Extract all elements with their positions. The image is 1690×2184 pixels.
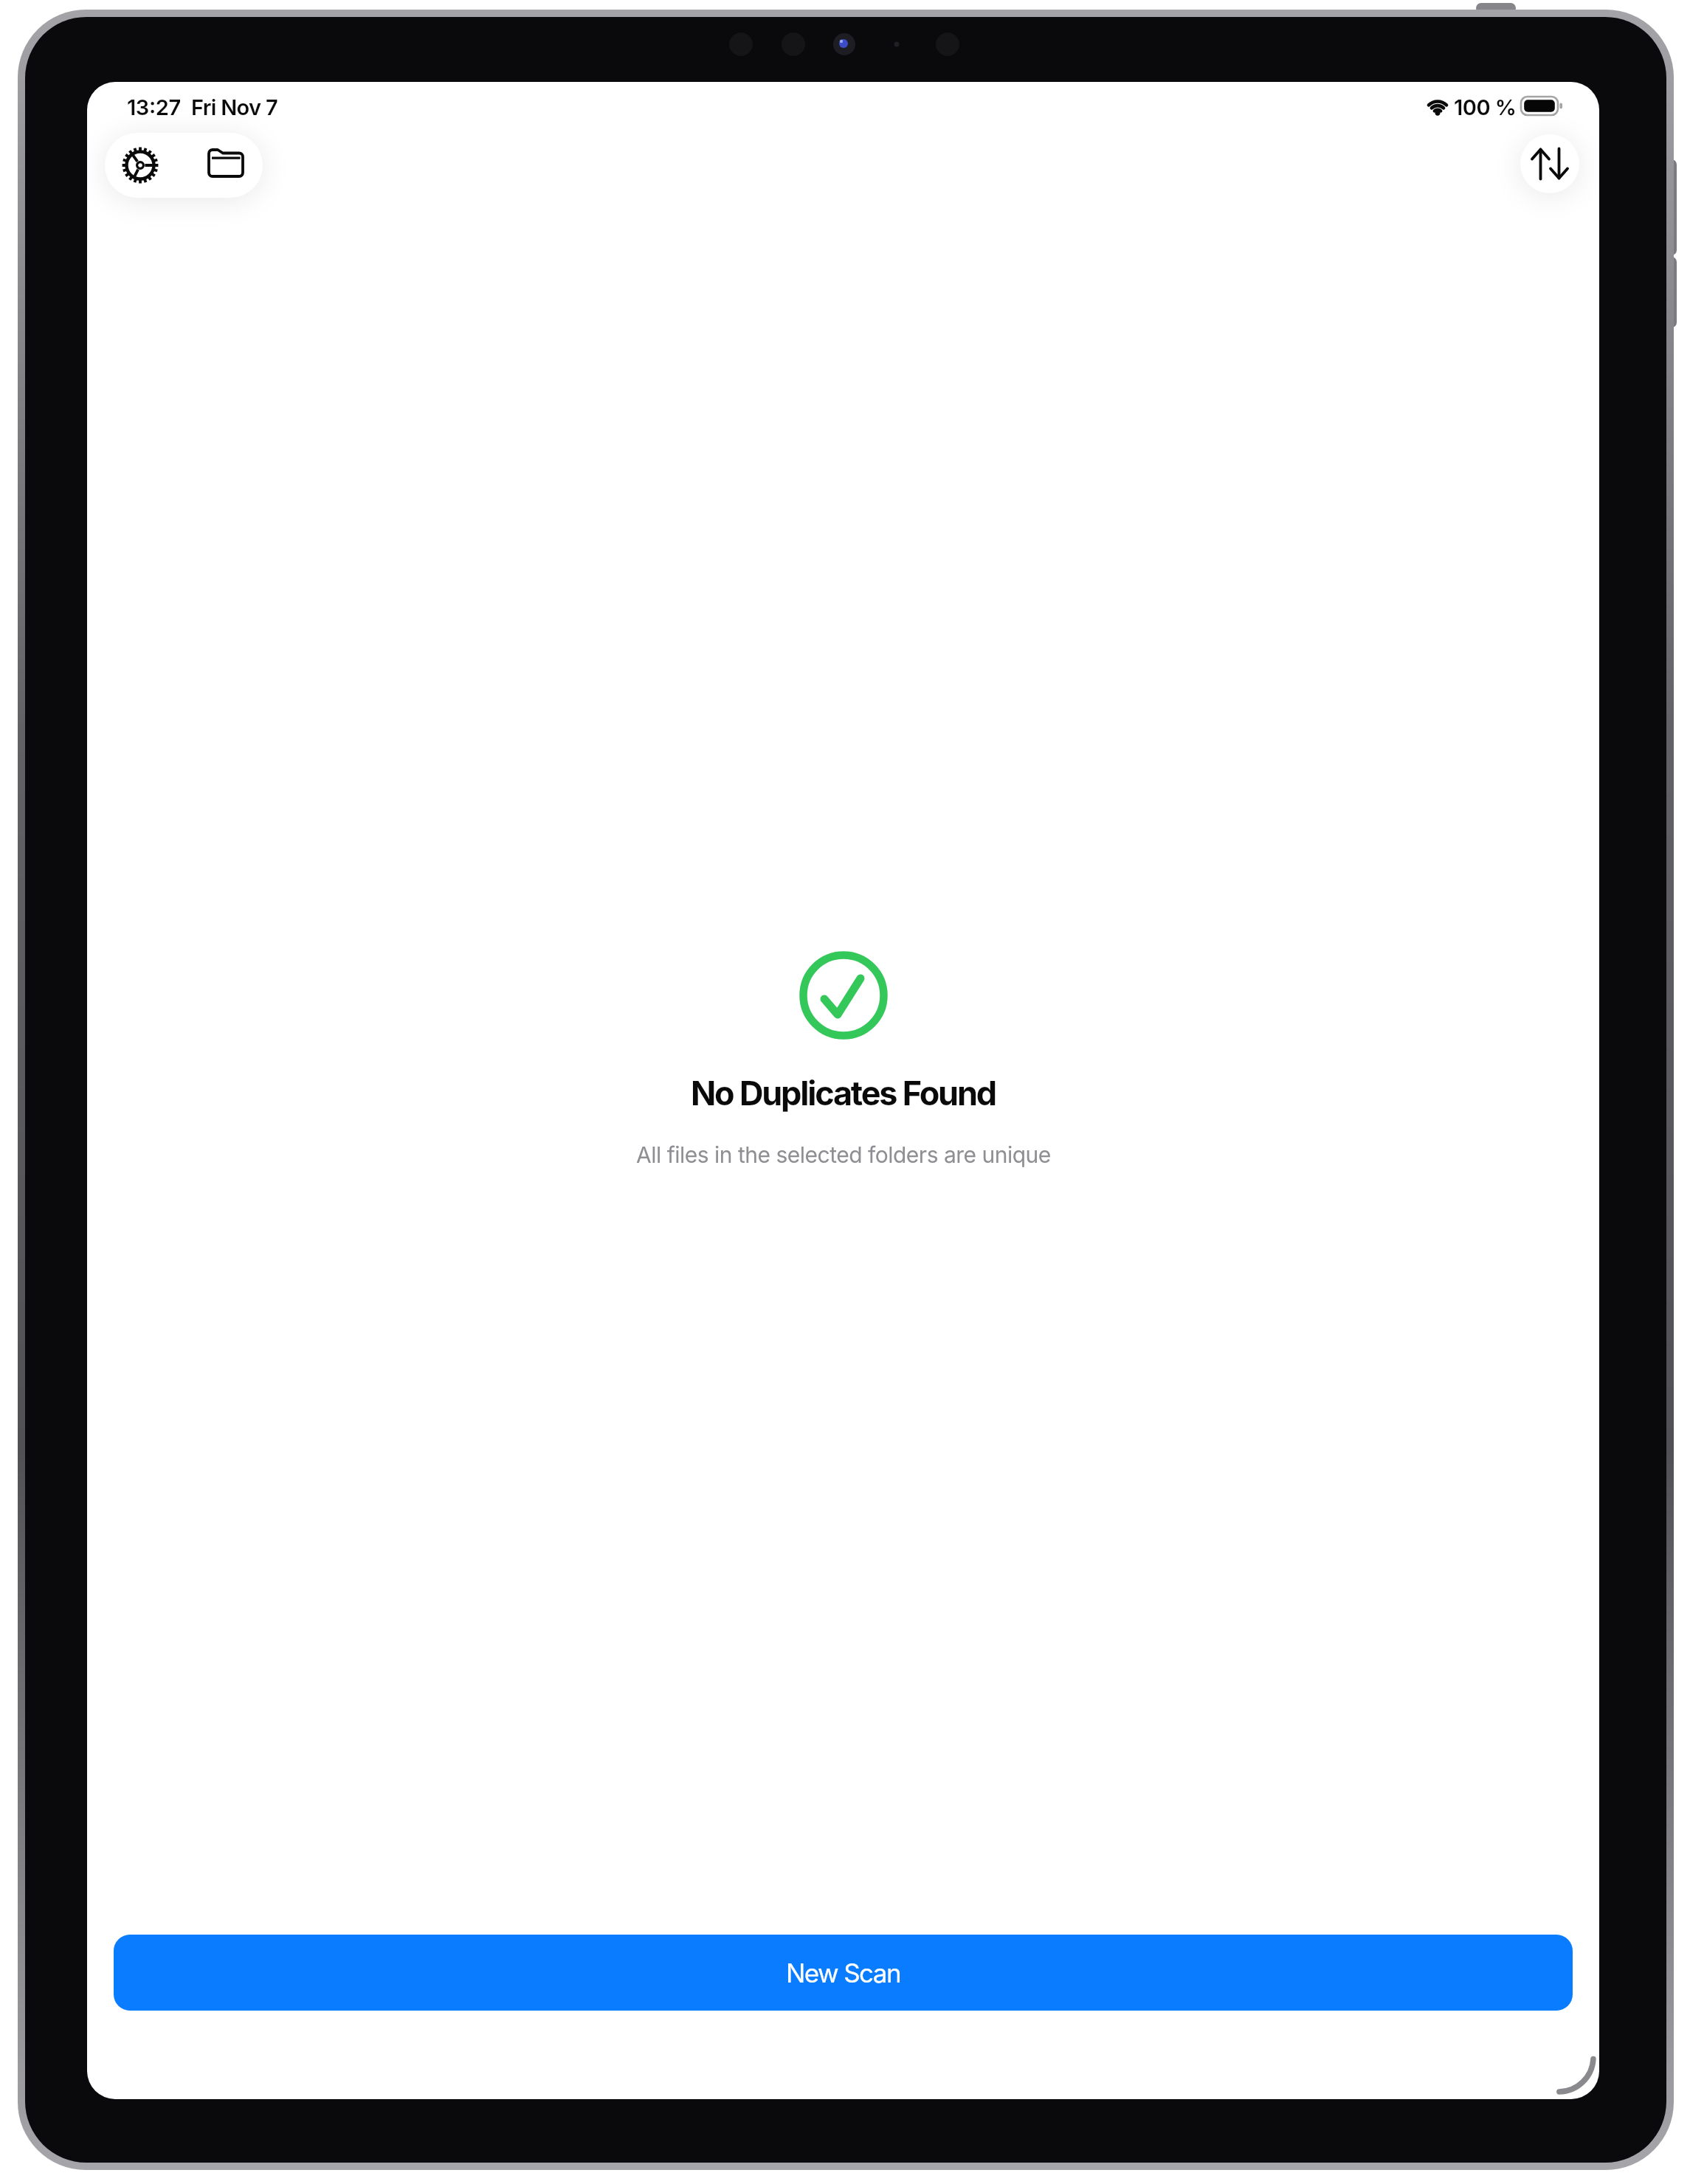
button[interactable] (105, 133, 184, 198)
staticText: Fri Nov 7 (191, 94, 277, 120)
staticText: 13:27 (127, 94, 181, 120)
staticText: All files in the selected folders are un… (636, 1141, 1051, 1168)
button[interactable] (1520, 134, 1579, 193)
staticText: New Scan (786, 1957, 900, 1988)
staticText: 100 % (1454, 94, 1517, 120)
button[interactable]: New Scan (114, 1935, 1573, 2011)
staticText: No Duplicates Found (691, 1073, 996, 1113)
button[interactable] (184, 133, 263, 198)
